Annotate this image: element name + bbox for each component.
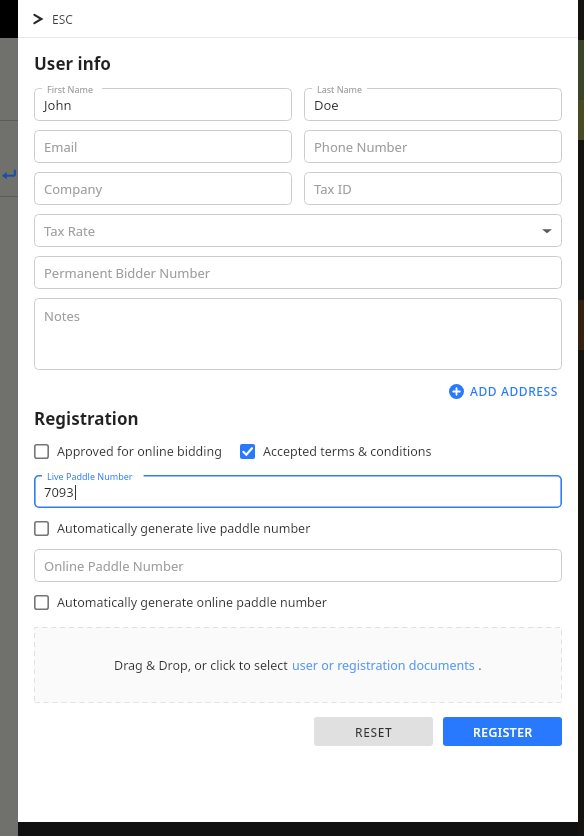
staticText: 7093 (44, 483, 74, 501)
button[interactable]: Doe (304, 88, 562, 121)
button[interactable]: Approved for online bidding (34, 441, 222, 462)
staticText: Automatically generate online paddle num… (57, 594, 327, 611)
button[interactable]: Permanent Bidder Number (34, 256, 562, 289)
button[interactable]: John (34, 88, 292, 121)
staticText: Tax ID (314, 180, 352, 198)
staticText: Doe (314, 96, 339, 114)
staticText: First Name (47, 83, 93, 95)
staticText: Automatically generate live paddle numbe… (57, 520, 311, 537)
staticText: John (44, 96, 72, 114)
staticText: Company (44, 180, 103, 198)
button[interactable]: ADD ADDRESS (445, 379, 562, 403)
staticText: Online Paddle Number (44, 557, 184, 575)
other: Close (32, 13, 44, 25)
staticText: Notes (44, 307, 80, 325)
button[interactable]: RESET (314, 717, 433, 746)
staticText: Registration (34, 407, 139, 430)
staticText: RESET (355, 724, 393, 740)
button[interactable]: Phone Number (304, 130, 562, 163)
button[interactable]: Tax ID (304, 172, 562, 205)
staticText: Live Paddle Number (47, 470, 133, 482)
staticText: user or registration documents (292, 657, 475, 674)
staticText: Approved for online bidding (57, 443, 222, 460)
staticText: ESC (52, 11, 73, 27)
staticText: Permanent Bidder Number (44, 264, 211, 282)
staticText: Email (44, 138, 78, 156)
button[interactable]: Notes (34, 298, 562, 370)
button[interactable]: 7093 (34, 475, 562, 508)
button[interactable]: Email (34, 130, 292, 163)
button[interactable]: Company (34, 172, 292, 205)
staticText: ADD ADDRESS (470, 383, 558, 399)
button[interactable]: REGISTER (443, 717, 562, 746)
button[interactable]: Drag & Drop, or click to select (34, 627, 562, 703)
button[interactable]: Accepted terms & conditions (240, 441, 432, 462)
staticText: Tax Rate (44, 222, 96, 240)
button[interactable]: Automatically generate live paddle numbe… (34, 518, 311, 539)
staticText: Last Name (317, 83, 363, 95)
button[interactable]: Online Paddle Number (34, 549, 562, 582)
button[interactable]: Close (18, 0, 578, 37)
staticText: Accepted terms & conditions (263, 443, 432, 460)
staticText: REGISTER (473, 724, 533, 740)
other: Back (2, 168, 16, 182)
button[interactable]: Tax Rate (34, 214, 562, 247)
other: Open dropdown (542, 226, 552, 236)
staticText: Drag & Drop, or click to select (114, 657, 292, 674)
staticText: Phone Number (314, 138, 408, 156)
button[interactable]: Automatically generate online paddle num… (34, 592, 327, 613)
staticText: User info (34, 52, 111, 75)
staticText: . (475, 657, 482, 674)
